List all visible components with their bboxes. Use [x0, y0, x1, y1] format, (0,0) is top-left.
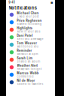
button[interactable]: Highlights	[6, 26, 55, 33]
staticText: 9:41	[8, 1, 14, 4]
button[interactable]: Marcus Webb	[6, 71, 55, 78]
staticText: Priya Raghavan	[17, 19, 42, 22]
staticText: Mentioned you	[17, 45, 39, 48]
staticText: Shared an album	[17, 60, 40, 63]
button[interactable]: Priya Raghavan	[6, 18, 55, 26]
button[interactable]: Reminder	[6, 48, 55, 56]
staticText: Workout at 6pm	[17, 52, 38, 56]
button[interactable]: Nil de Moor	[6, 78, 55, 86]
staticText: Dani Patel	[17, 34, 33, 37]
staticText: Notifications	[8, 5, 36, 11]
staticText: Tom Weaver	[17, 41, 37, 45]
button[interactable]: Michael Chen	[6, 11, 55, 18]
button[interactable]: Dani Patel	[6, 33, 55, 41]
staticText: Nil de Moor	[17, 79, 35, 82]
staticText: Highlights	[17, 26, 33, 30]
staticText: Sarah Lim	[17, 56, 33, 60]
staticText: Commented	[17, 75, 34, 78]
staticText: Started following	[17, 22, 42, 26]
button[interactable]: Tom Weaver	[6, 41, 55, 48]
staticText: Liked your post	[17, 15, 39, 18]
staticText: Reminder	[17, 49, 32, 52]
staticText: Michael Chen	[17, 11, 39, 15]
staticText: Heavy rain tonight	[17, 67, 42, 71]
button[interactable]: Sarah Lim	[6, 56, 55, 63]
staticText: ▮▮	[50, 1, 52, 4]
staticText: Sent you a message	[17, 37, 44, 41]
staticText: Added to favorites	[17, 82, 43, 86]
staticText: Weather Alert	[17, 64, 38, 67]
staticText: Marcus Webb	[17, 71, 39, 75]
staticText: New in your area	[17, 30, 40, 33]
button[interactable]: Weather Alert	[6, 63, 55, 71]
